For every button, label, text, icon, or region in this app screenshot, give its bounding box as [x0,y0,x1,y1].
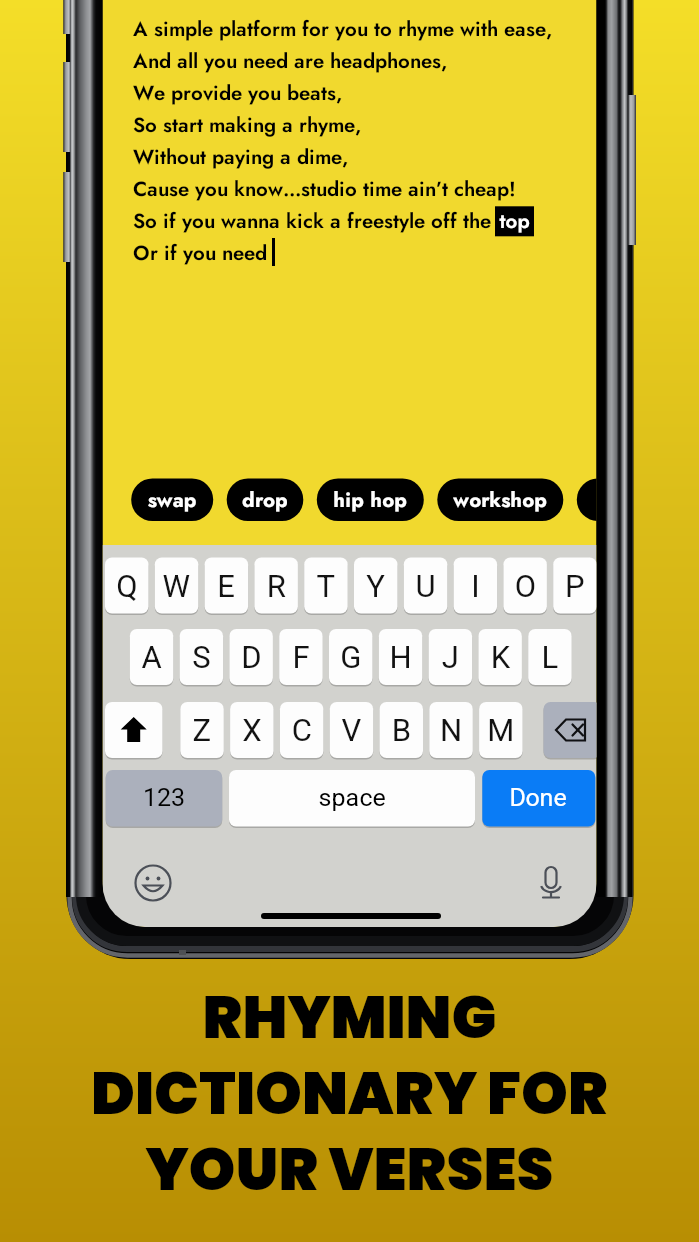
button[interactable]: V [330,702,374,758]
button[interactable]: O [503,558,547,614]
button[interactable]: P [553,558,597,614]
button[interactable]: K [478,629,522,685]
button[interactable]: F [279,629,323,685]
button[interactable]: lyric [577,478,667,521]
button[interactable]: L [528,629,572,685]
button[interactable]: swap [131,478,213,521]
button[interactable]: A [130,629,174,685]
button[interactable]: Emoji [135,865,171,901]
button[interactable]: Backspace [544,702,602,758]
button[interactable]: J [429,629,473,685]
button[interactable]: drop [227,478,304,521]
button[interactable]: S [180,629,224,685]
button[interactable]: T [304,558,348,614]
button[interactable]: E [205,558,249,614]
button[interactable]: C [280,702,324,758]
button[interactable]: X [230,702,274,758]
button[interactable]: Q [105,558,149,614]
button[interactable]: workshop [437,478,563,521]
button[interactable]: W [155,558,199,614]
button[interactable]: N [429,702,473,758]
button[interactable]: B [380,702,424,758]
button[interactable]: H [379,629,423,685]
button[interactable]: R [254,558,298,614]
button[interactable]: hip hop [317,478,424,521]
button[interactable]: Done [482,770,595,827]
button[interactable]: Dictation [533,865,569,901]
button[interactable]: I [454,558,498,614]
button[interactable]: D [229,629,273,685]
button[interactable]: G [329,629,373,685]
button[interactable]: M [479,702,523,758]
button[interactable]: U [404,558,448,614]
button[interactable]: Z [180,702,224,758]
button[interactable]: Numbers [106,770,223,827]
button[interactable]: Shift [105,702,163,758]
button[interactable]: Y [354,558,398,614]
button[interactable]: space [229,770,475,827]
